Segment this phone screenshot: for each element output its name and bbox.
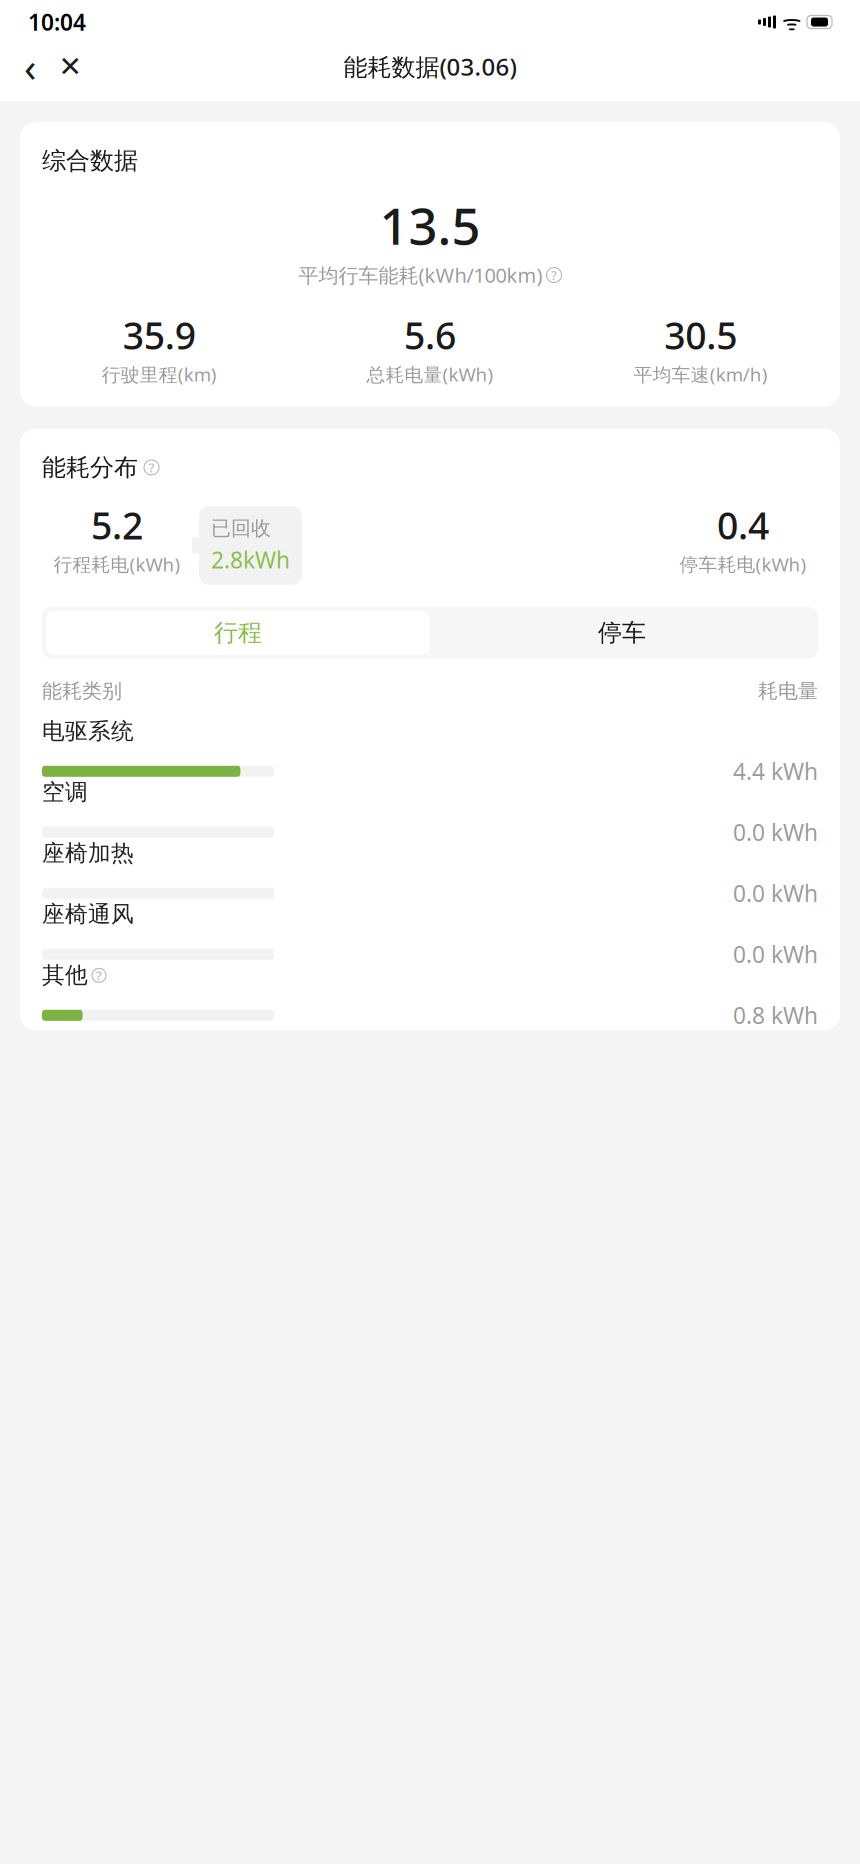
staticText: ? <box>551 266 557 284</box>
staticText: 能耗分布 <box>42 453 138 482</box>
staticText: 0.8 kWh <box>733 1000 818 1030</box>
staticText: 13.5 <box>379 191 480 259</box>
staticText: ? <box>148 459 154 476</box>
staticText: 2.8kWh <box>211 545 290 575</box>
button[interactable]: Back <box>10 44 50 88</box>
staticText: 4.4 kWh <box>733 756 818 786</box>
staticText: 35.9 <box>123 310 196 360</box>
button[interactable]: 行程 <box>46 611 430 655</box>
staticText: 0.0 kWh <box>733 817 818 847</box>
staticText: 总耗电量(kWh) <box>366 362 493 387</box>
staticText: 耗电量 <box>758 679 818 703</box>
staticText: 平均车速(km/h) <box>634 362 768 387</box>
staticText: ✕ <box>58 51 81 82</box>
button[interactable]: Close <box>50 44 90 88</box>
staticText: 停车耗电(kWh) <box>679 552 806 576</box>
staticText: 行驶里程(km) <box>102 362 217 387</box>
staticText: 座椅通风 <box>42 900 134 928</box>
staticText: 平均行车能耗(kWh/100km) <box>298 262 542 288</box>
staticText: 5.6 <box>404 310 456 360</box>
staticText: 电驱系统 <box>42 717 134 745</box>
staticText: 行程耗电(kWh) <box>53 552 180 576</box>
staticText: ᯤ <box>782 8 801 36</box>
staticText: ‹ <box>24 40 36 93</box>
staticText: 座椅加热 <box>42 839 134 867</box>
staticText: ? <box>96 966 102 984</box>
staticText: 能耗类别 <box>42 679 122 703</box>
staticText: 空调 <box>42 778 88 806</box>
button[interactable]: 停车 <box>430 611 814 655</box>
staticText: 0.4 <box>717 500 769 550</box>
staticText: 5.2 <box>91 500 143 550</box>
staticText: 停车 <box>598 618 646 648</box>
staticText: 其他 <box>42 961 88 989</box>
staticText: 综合数据 <box>42 146 138 175</box>
staticText: 已回收 <box>211 516 271 541</box>
staticText: 0.0 kWh <box>733 939 818 969</box>
staticText: 30.5 <box>664 310 737 360</box>
staticText: 0.0 kWh <box>733 878 818 908</box>
staticText: 10:04 <box>28 7 86 37</box>
staticText: 行程 <box>214 618 262 648</box>
staticText: 能耗数据(03.06) <box>343 51 516 82</box>
